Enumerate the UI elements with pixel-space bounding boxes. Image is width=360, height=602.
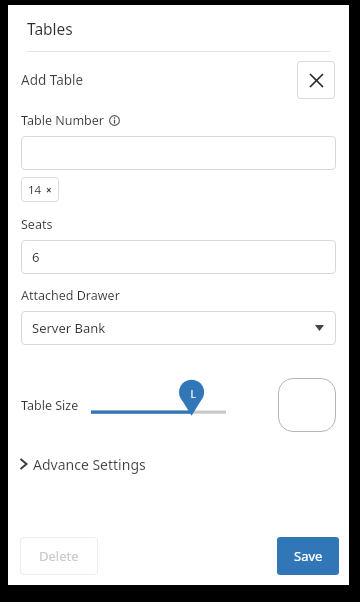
- button[interactable]: Save: [277, 537, 339, 575]
- button[interactable]: [21, 136, 336, 170]
- staticText: L: [188, 387, 198, 401]
- button[interactable]: Advance Settings: [8, 449, 349, 479]
- staticText: Server Bank: [32, 319, 106, 337]
- button[interactable]: Table size slider: [91, 375, 226, 435]
- button[interactable]: 6: [21, 240, 336, 274]
- staticText: Add Table: [21, 71, 84, 89]
- staticText: Seats: [21, 216, 53, 233]
- button[interactable]: Close: [297, 61, 335, 99]
- staticText: Tables: [27, 18, 73, 39]
- staticText: Save: [294, 547, 323, 565]
- staticText: Attached Drawer: [21, 287, 120, 304]
- staticText: Advance Settings: [33, 455, 146, 474]
- button[interactable]: Server Bank: [21, 311, 336, 345]
- staticText: 6: [32, 248, 40, 266]
- staticText: Table Size: [21, 397, 79, 414]
- staticText: ×: [46, 183, 52, 197]
- staticText: Delete: [39, 547, 79, 565]
- staticText: 14: [28, 182, 42, 198]
- button[interactable]: 14: [21, 177, 59, 202]
- staticText: Table Number: [21, 112, 104, 129]
- button[interactable]: Delete: [20, 537, 98, 575]
- button[interactable]: Table shape preview: [278, 378, 336, 432]
